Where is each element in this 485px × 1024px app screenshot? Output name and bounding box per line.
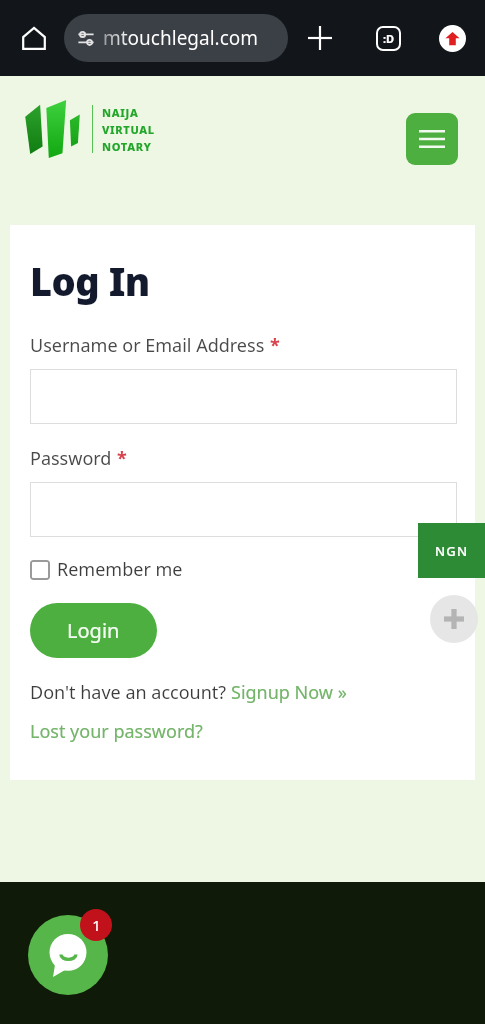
staticText: mtouchlegal.com bbox=[103, 25, 259, 51]
staticText: Password bbox=[30, 446, 112, 471]
staticText: Login bbox=[67, 617, 120, 644]
button[interactable] bbox=[30, 369, 457, 424]
staticText: * bbox=[270, 333, 280, 358]
staticText: Remember me bbox=[57, 557, 183, 582]
button[interactable]: Signup Now » bbox=[231, 680, 347, 705]
staticText: Username or Email Address bbox=[30, 333, 265, 358]
staticText: VIRTUAL bbox=[102, 122, 155, 137]
staticText: :D bbox=[383, 31, 395, 46]
staticText: Don't have an account? bbox=[30, 680, 231, 705]
button[interactable]: Lost your password? bbox=[30, 719, 203, 744]
button[interactable]: NGN bbox=[418, 523, 485, 578]
staticText: NOTARY bbox=[102, 139, 152, 154]
button[interactable]: Add bbox=[430, 595, 478, 643]
button[interactable]: NAIJA bbox=[24, 100, 155, 158]
staticText: NGN bbox=[435, 542, 469, 560]
staticText: Lost your password? bbox=[30, 719, 203, 744]
staticText: NAIJA bbox=[102, 105, 139, 120]
button[interactable]: Home bbox=[10, 14, 58, 62]
button[interactable]: New tab bbox=[296, 14, 344, 62]
button[interactable]: Menu bbox=[406, 113, 458, 165]
button[interactable]: Tabs bbox=[364, 14, 412, 62]
button[interactable]: Account bbox=[428, 14, 476, 62]
button[interactable]: Chat bbox=[28, 915, 108, 995]
staticText: 1 bbox=[92, 915, 101, 935]
button[interactable] bbox=[30, 482, 457, 537]
button[interactable]: mtouchlegal.com bbox=[64, 14, 288, 62]
button[interactable]: Login bbox=[30, 603, 157, 658]
staticText: * bbox=[117, 446, 127, 471]
staticText: Log In bbox=[30, 255, 150, 307]
button[interactable]: Remember me bbox=[30, 557, 183, 582]
staticText: Signup Now » bbox=[231, 680, 347, 705]
